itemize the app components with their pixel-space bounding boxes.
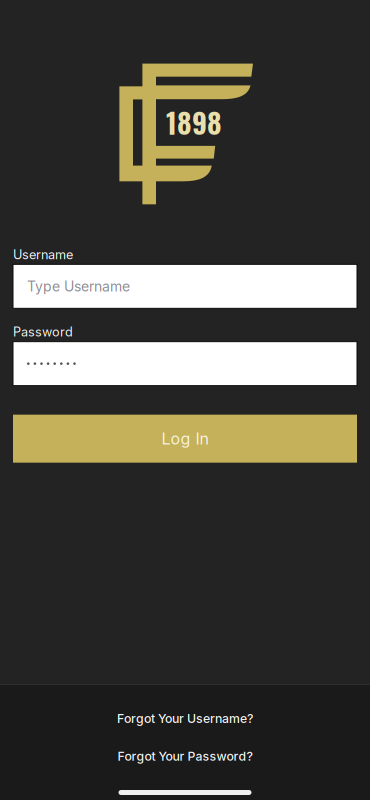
staticText: Log In bbox=[161, 429, 208, 448]
staticText: Forgot Your Password? bbox=[117, 749, 252, 764]
button[interactable]: Password bbox=[13, 342, 357, 386]
button[interactable]: Log In bbox=[13, 415, 357, 463]
staticText: 1898 bbox=[166, 101, 222, 143]
staticText: Password bbox=[13, 324, 73, 340]
staticText: Type Username bbox=[27, 278, 130, 295]
staticText: Forgot Your Username? bbox=[117, 711, 253, 726]
button[interactable]: Forgot Your Username? bbox=[0, 706, 370, 731]
button[interactable]: Type Username bbox=[13, 264, 357, 308]
button[interactable]: Forgot Your Password? bbox=[0, 744, 370, 769]
staticText: Username bbox=[13, 247, 73, 262]
